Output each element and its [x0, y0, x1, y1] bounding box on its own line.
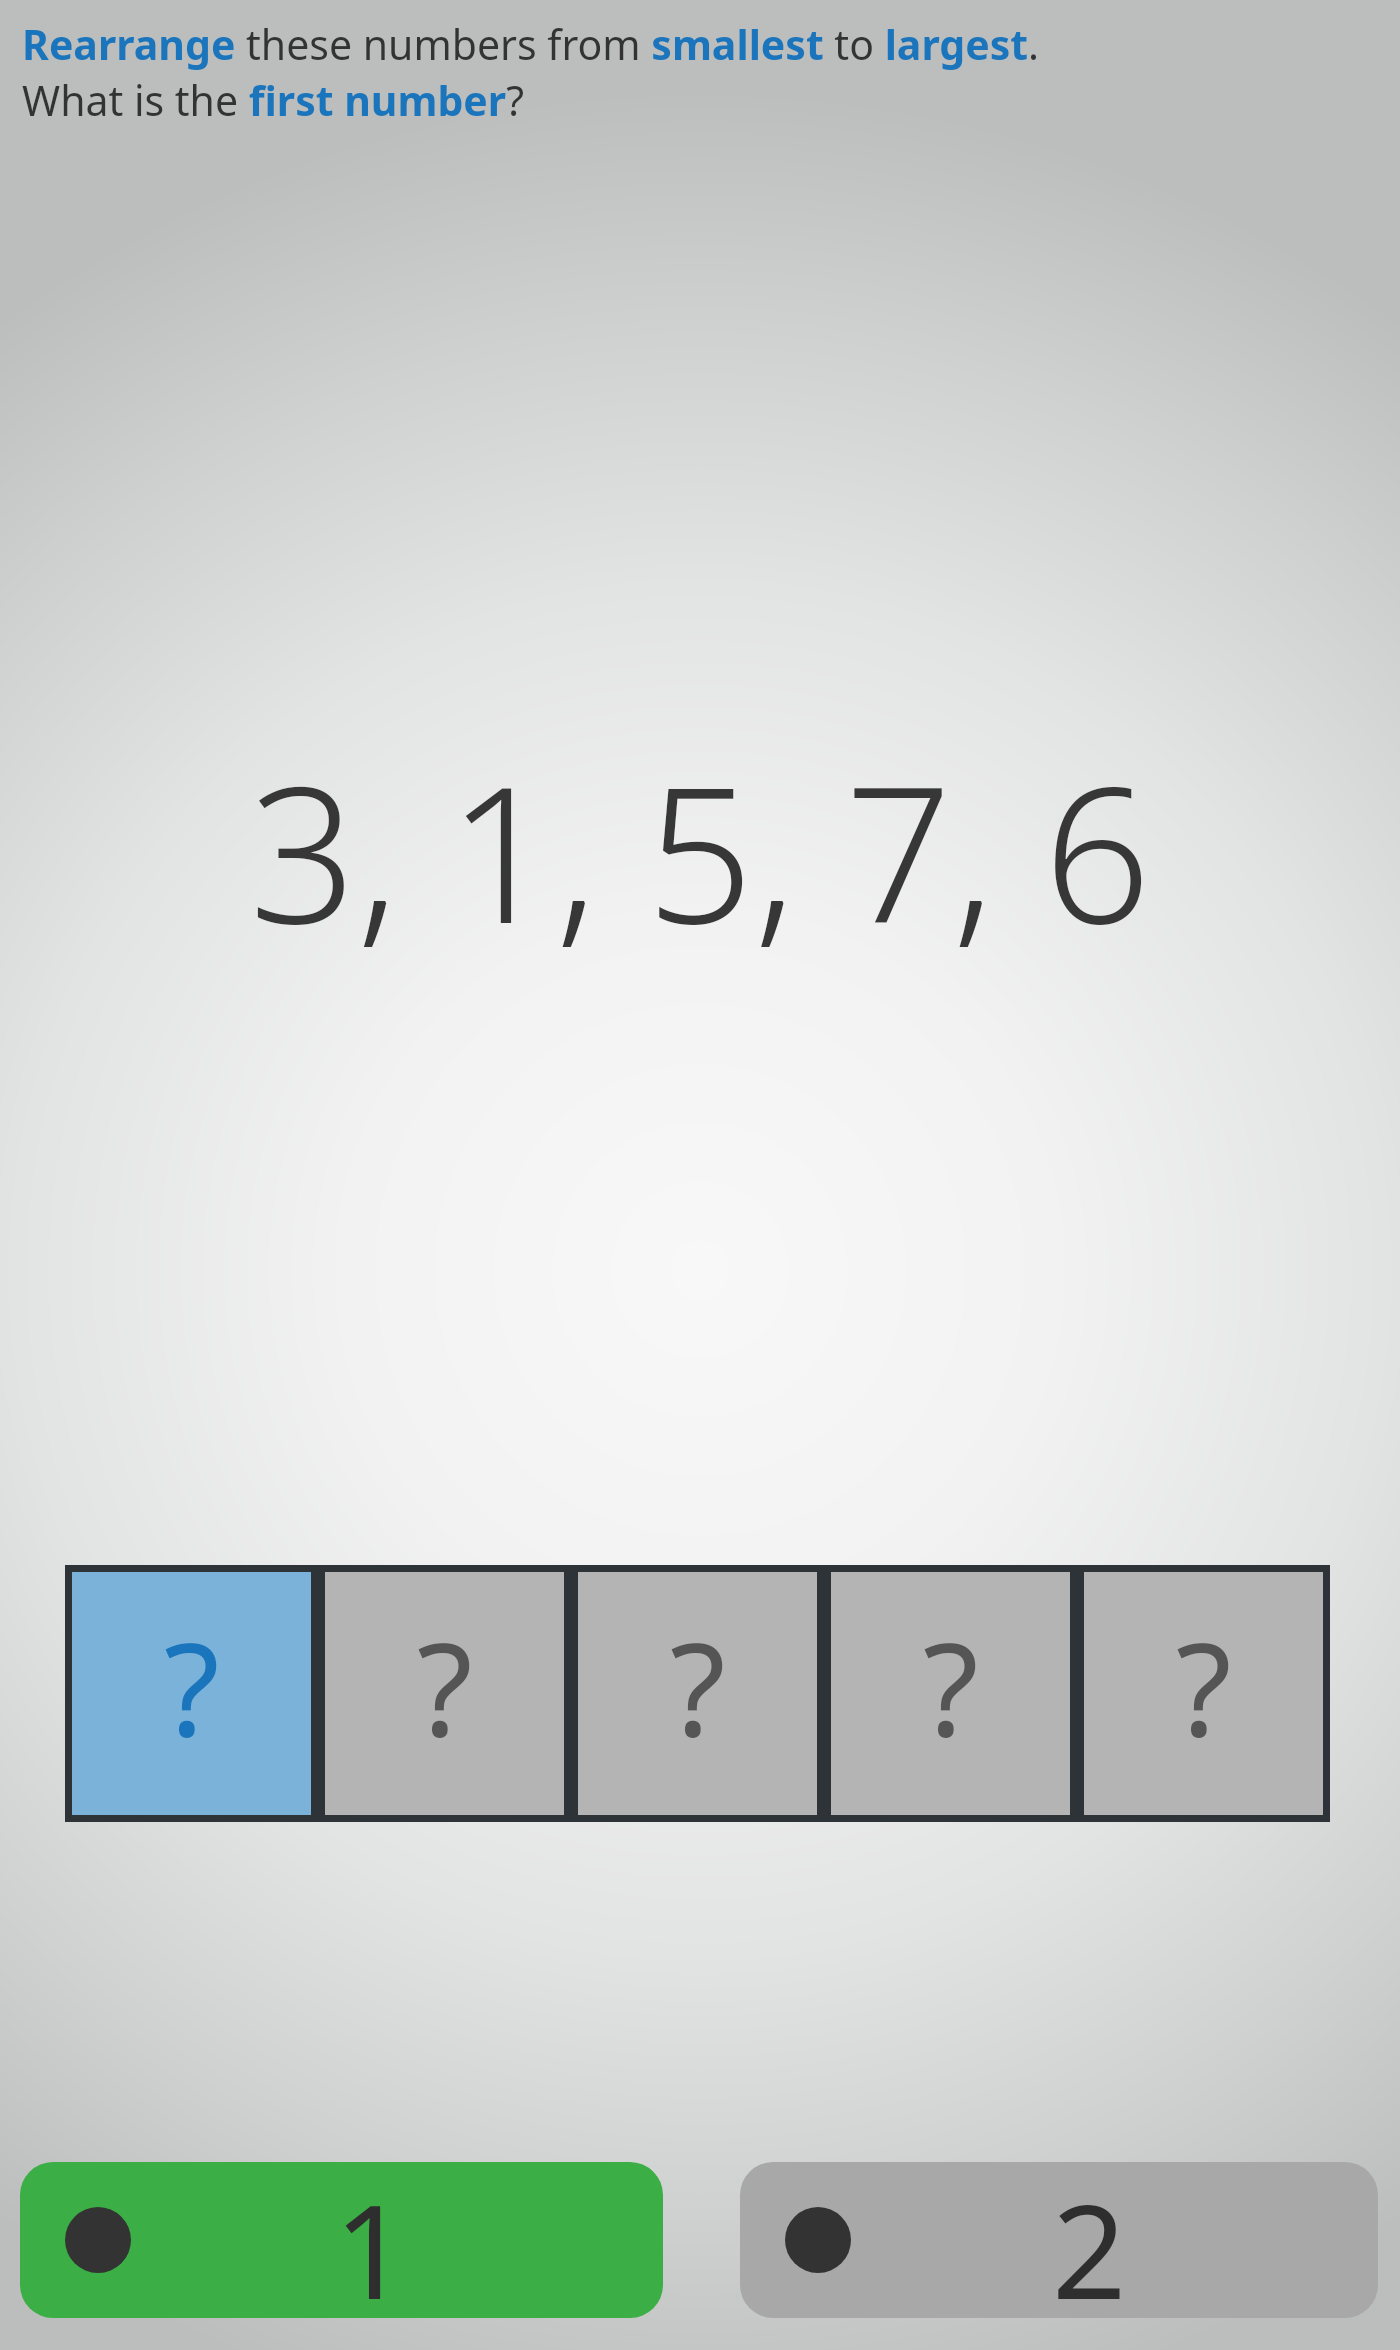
- staticText: ?: [164, 1599, 220, 1773]
- button[interactable]: 2: [740, 2162, 1378, 2318]
- staticText: 1: [334, 2162, 409, 2316]
- staticText: 2: [1052, 2162, 1127, 2316]
- staticText: ?: [923, 1599, 979, 1773]
- button[interactable]: 1: [20, 2162, 663, 2318]
- staticText: 3, 1, 5, 7, 6: [0, 722, 1400, 978]
- staticText: Rearrange these numbers from smallest to…: [22, 16, 1040, 72]
- button[interactable]: Answer slot 5: [1077, 1565, 1330, 1822]
- staticText: ?: [670, 1599, 726, 1773]
- staticText: ?: [1176, 1599, 1232, 1773]
- button[interactable]: Answer slot 3: [571, 1565, 824, 1822]
- staticText: What is the first number?: [22, 72, 524, 128]
- staticText: ?: [417, 1599, 473, 1773]
- button[interactable]: Answer slot 4: [824, 1565, 1077, 1822]
- button[interactable]: Answer slot 1: [65, 1565, 318, 1822]
- button[interactable]: Answer slot 2: [318, 1565, 571, 1822]
